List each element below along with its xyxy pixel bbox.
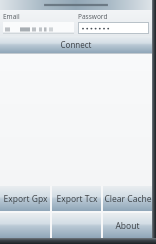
button[interactable]: About <box>103 213 152 238</box>
button[interactable] <box>3 22 74 34</box>
staticText: Clear Cache <box>104 193 152 205</box>
button[interactable]: Empty slot <box>52 213 101 238</box>
staticText: Password <box>78 12 108 21</box>
button[interactable]: Export Tcx <box>52 186 101 211</box>
staticText: Export Tcx <box>56 193 98 205</box>
staticText: About <box>115 220 140 232</box>
button[interactable]: Empty slot <box>0 213 50 238</box>
button[interactable]: Connect <box>0 36 152 53</box>
button[interactable]: Clear Cache <box>103 186 152 211</box>
staticText: Connect <box>60 39 92 50</box>
button[interactable]: Export Gpx <box>0 186 50 211</box>
staticText: Email <box>3 12 20 21</box>
staticText: Export Gpx <box>3 193 48 205</box>
button[interactable] <box>78 22 149 34</box>
